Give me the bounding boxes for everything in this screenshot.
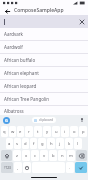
button[interactable]: b xyxy=(49,150,57,161)
staticText: d xyxy=(24,141,27,147)
button[interactable]: African Tree Pangolin xyxy=(0,93,88,105)
button[interactable]: Backspace xyxy=(76,150,87,161)
button[interactable]: i xyxy=(61,126,69,137)
button[interactable]: r xyxy=(25,126,33,137)
button[interactable]: j xyxy=(56,138,64,149)
staticText: b xyxy=(52,153,55,159)
staticText: u xyxy=(55,129,58,135)
button[interactable]: d xyxy=(22,138,29,149)
button[interactable]: k xyxy=(65,138,73,149)
staticText: m xyxy=(69,153,73,159)
staticText: . xyxy=(69,165,71,171)
button[interactable]: , xyxy=(14,162,22,173)
staticText: p xyxy=(82,129,85,135)
staticText: n xyxy=(61,153,64,159)
button[interactable]: Back xyxy=(3,7,11,15)
staticText: v xyxy=(43,153,46,159)
button[interactable]: African leopard xyxy=(0,80,88,92)
staticText: Aardvark xyxy=(4,31,24,37)
button[interactable]: clipboard xyxy=(32,117,56,123)
staticText: y xyxy=(46,129,49,135)
staticText: ComposeSampleApp xyxy=(14,7,64,14)
staticText: African buffalo xyxy=(4,57,36,63)
button[interactable]: n xyxy=(58,150,66,161)
staticText: z xyxy=(16,153,18,159)
staticText: African elephant xyxy=(4,70,39,76)
staticText: c xyxy=(34,153,37,159)
staticText: w xyxy=(11,129,15,135)
staticText: African leopard xyxy=(4,83,37,89)
button[interactable]: Shift xyxy=(1,150,12,161)
staticText: q xyxy=(3,129,6,135)
staticText: ?123 xyxy=(4,166,11,170)
staticText: clipboard xyxy=(39,118,54,122)
button[interactable]: ?123 xyxy=(1,162,13,173)
staticText: e xyxy=(19,129,22,135)
staticText: h xyxy=(50,141,53,147)
button[interactable]: Clear xyxy=(79,19,85,25)
button[interactable]: . xyxy=(66,162,74,173)
staticText: G xyxy=(5,118,8,123)
button[interactable]: African buffalo xyxy=(0,54,88,66)
button[interactable]: Aardwolf xyxy=(0,41,88,53)
button[interactable]: m xyxy=(67,150,75,161)
button[interactable]: s xyxy=(14,138,21,149)
staticText: t xyxy=(37,129,39,135)
button[interactable]: Google xyxy=(3,117,10,124)
button[interactable]: y xyxy=(43,126,51,137)
button[interactable]: c xyxy=(31,150,39,161)
staticText: k xyxy=(68,141,71,147)
button[interactable]: g xyxy=(38,138,46,149)
button[interactable]: v xyxy=(40,150,48,161)
staticText: g xyxy=(41,141,44,147)
button[interactable]: t xyxy=(34,126,42,137)
button[interactable]: z xyxy=(13,150,21,161)
staticText: Albatross xyxy=(4,108,24,114)
staticText: l xyxy=(77,141,79,147)
button[interactable]: w xyxy=(9,126,16,137)
button[interactable]: Voice input xyxy=(79,117,85,123)
button[interactable]: h xyxy=(47,138,55,149)
button[interactable]: f xyxy=(30,138,37,149)
button[interactable]: African elephant xyxy=(0,67,88,79)
button[interactable]: a xyxy=(6,138,13,149)
staticText: o xyxy=(73,129,76,135)
button[interactable]: Albatross xyxy=(0,106,88,115)
button[interactable]: e xyxy=(17,126,24,137)
staticText: African Tree Pangolin xyxy=(4,96,49,102)
button[interactable]: Clear xyxy=(0,15,88,28)
staticText: x xyxy=(25,153,28,159)
button[interactable]: q xyxy=(1,126,8,137)
button[interactable]: l xyxy=(74,138,82,149)
staticText: r xyxy=(28,129,30,135)
button[interactable]: u xyxy=(52,126,60,137)
staticText: i xyxy=(64,129,66,135)
staticText: s xyxy=(16,141,19,147)
staticText: j xyxy=(59,141,61,147)
button[interactable]: Aardvark xyxy=(0,28,88,40)
staticText: , xyxy=(17,165,19,171)
button[interactable]: x xyxy=(22,150,30,161)
staticText: a xyxy=(8,141,11,147)
button[interactable]: Enter xyxy=(75,162,87,173)
button[interactable]: p xyxy=(79,126,87,137)
staticText: Aardwolf xyxy=(4,44,23,50)
button[interactable]: o xyxy=(70,126,78,137)
button[interactable]: Emoji xyxy=(23,162,31,173)
staticText: f xyxy=(33,141,35,147)
